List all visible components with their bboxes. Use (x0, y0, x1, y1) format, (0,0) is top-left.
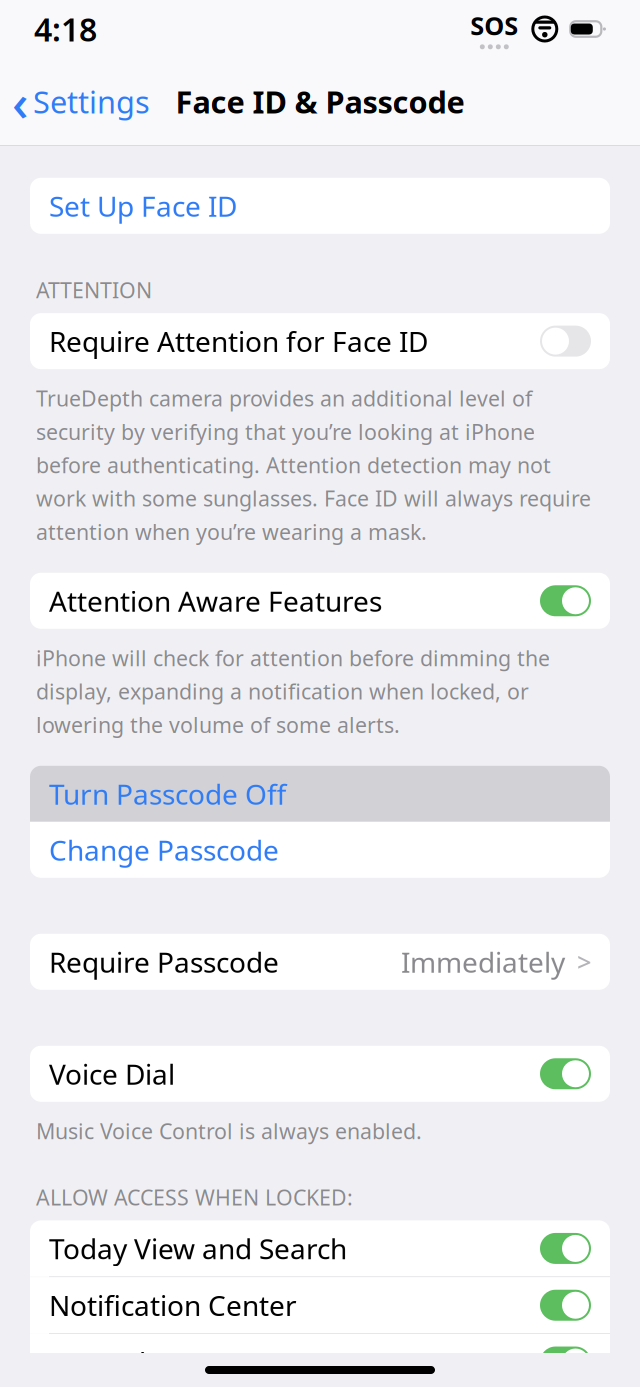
button[interactable]: Require Attention for Face ID (30, 313, 610, 369)
staticText: Today View and Search (49, 1230, 347, 1267)
button[interactable]: Change Passcode (30, 822, 610, 878)
staticText: Attention Aware Features (49, 582, 382, 619)
staticText: Face ID & Passcode (175, 81, 464, 122)
staticText: Require Passcode (49, 943, 279, 980)
button[interactable]: Voice Dial (30, 1046, 610, 1102)
staticText: iPhone will check for attention before d… (36, 644, 550, 739)
button[interactable]: Today View and Search (30, 1220, 610, 1276)
staticText: ‹ (12, 68, 29, 135)
button[interactable]: Attention Aware Features (30, 573, 610, 629)
staticText: Turn Passcode Off (49, 775, 286, 812)
staticText: Control Center (49, 1343, 242, 1381)
staticText: ALLOW ACCESS WHEN LOCKED: (36, 1183, 353, 1211)
staticText: Require Attention for Face ID (49, 322, 428, 360)
button[interactable]: Set Up Face ID (30, 178, 610, 234)
staticText: Settings (33, 81, 150, 122)
staticText: Voice Dial (49, 1055, 175, 1092)
button[interactable]: Notification Center (30, 1277, 610, 1333)
staticText: Notification Center (49, 1287, 297, 1324)
staticText: Set Up Face ID (49, 187, 237, 224)
staticText: Music Voice Control is always enabled. (36, 1117, 422, 1145)
staticText: Change Passcode (49, 831, 279, 868)
button[interactable]: Require Passcode (30, 934, 610, 990)
staticText: SOS (470, 9, 518, 42)
staticText: Immediately (401, 943, 565, 980)
staticText: ATTENTION (36, 276, 152, 304)
staticText: TrueDepth camera provides an additional … (36, 384, 591, 546)
button[interactable]: Turn Passcode Off (30, 766, 610, 822)
button[interactable]: ‹ (0, 77, 162, 125)
staticText: > (577, 945, 591, 978)
staticText: 4:18 (34, 8, 97, 50)
button[interactable]: Control Center (30, 1334, 610, 1387)
